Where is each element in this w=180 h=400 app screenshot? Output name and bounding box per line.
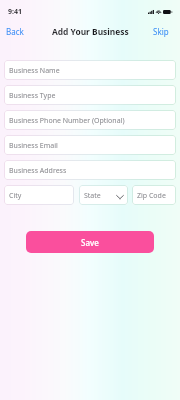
staticText: State [84,191,101,201]
button[interactable]: Zip Code [132,185,176,205]
button[interactable]: Business Address [4,160,176,180]
button[interactable]: Business Type [4,85,176,105]
button[interactable]: Business Name [4,60,176,80]
staticText: 9:41 [8,7,22,17]
other: Select state [116,195,124,199]
button[interactable]: City [4,185,74,205]
staticText: Business Type [9,91,56,101]
staticText: Save [81,237,99,248]
staticText: Business Email [9,141,58,151]
button[interactable]: Back [0,23,30,40]
staticText: Add Your Business [52,26,129,37]
button[interactable]: Save [26,231,154,253]
button[interactable]: Skip [147,23,180,40]
staticText: Back [6,26,24,37]
button[interactable]: Business Phone Number (Optional) [4,110,176,130]
staticText: Skip [153,26,169,37]
staticText: Business Phone Number (Optional) [9,116,125,126]
button[interactable]: Business Email [4,135,176,155]
other: Signal, Wi-Fi and battery status [148,10,172,14]
staticText: Business Name [9,66,60,76]
staticText: Zip Code [137,191,166,201]
button[interactable]: State [79,185,128,205]
staticText: City [9,191,22,201]
staticText: Business Address [9,166,67,176]
